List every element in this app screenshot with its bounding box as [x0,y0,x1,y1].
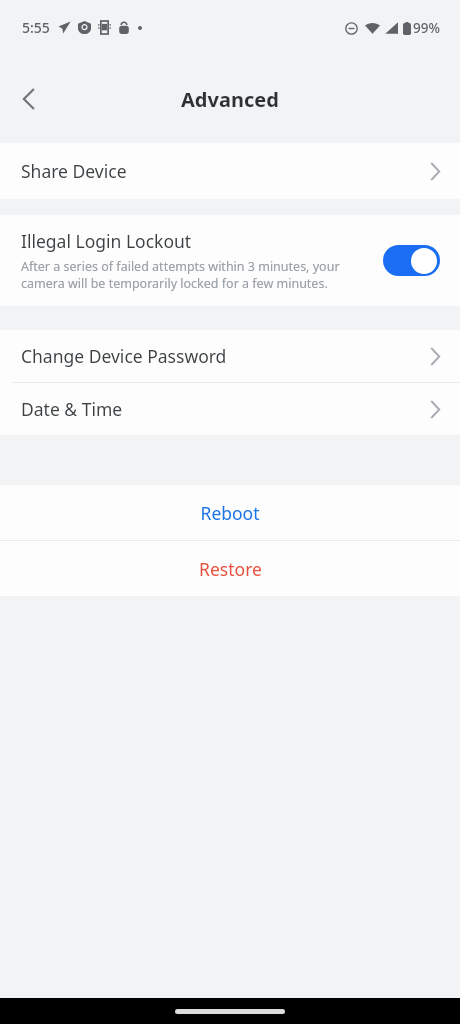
staticText: 99% [413,19,440,37]
staticText: Illegal Login Lockout [21,229,192,253]
staticText: 5:55 [22,18,50,37]
button[interactable]: Share Device [0,143,460,199]
staticText: After a series of failed attempts within… [21,258,371,292]
staticText: Share Device [21,159,431,183]
staticText: Date & Time [21,397,431,421]
button[interactable]: Illegal Login Lockout toggle [383,245,440,276]
button[interactable]: Date & Time [0,383,460,435]
staticText: Advanced [181,86,279,113]
button[interactable]: Illegal Login Lockout [0,215,460,306]
staticText: Change Device Password [21,344,431,368]
button[interactable]: Change Device Password [0,330,460,382]
button[interactable]: Restore [0,541,460,596]
staticText: Restore [199,557,262,581]
staticText: Reboot [200,501,260,525]
button[interactable]: Reboot [0,485,460,540]
button[interactable]: Back [6,77,50,121]
